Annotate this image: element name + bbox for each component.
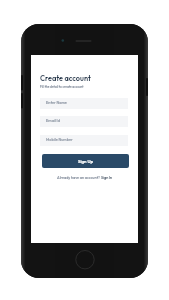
button[interactable]: Email Id bbox=[40, 116, 128, 127]
staticText: Already have an account? bbox=[57, 175, 101, 180]
staticText: Create account bbox=[40, 74, 91, 83]
staticText: Email Id bbox=[46, 118, 60, 123]
staticText: Enter Name bbox=[46, 100, 67, 105]
button[interactable]: Already have an account? bbox=[31, 175, 138, 180]
staticText: Sign In bbox=[101, 175, 113, 180]
staticText: Mobile Number bbox=[46, 137, 73, 142]
staticText: Fill the detail to create account bbox=[40, 85, 84, 89]
button[interactable]: Mobile Number bbox=[40, 135, 128, 146]
button[interactable]: Enter Name bbox=[40, 98, 128, 109]
staticText: Sign Up bbox=[78, 159, 94, 164]
button[interactable]: Sign Up bbox=[42, 154, 129, 168]
